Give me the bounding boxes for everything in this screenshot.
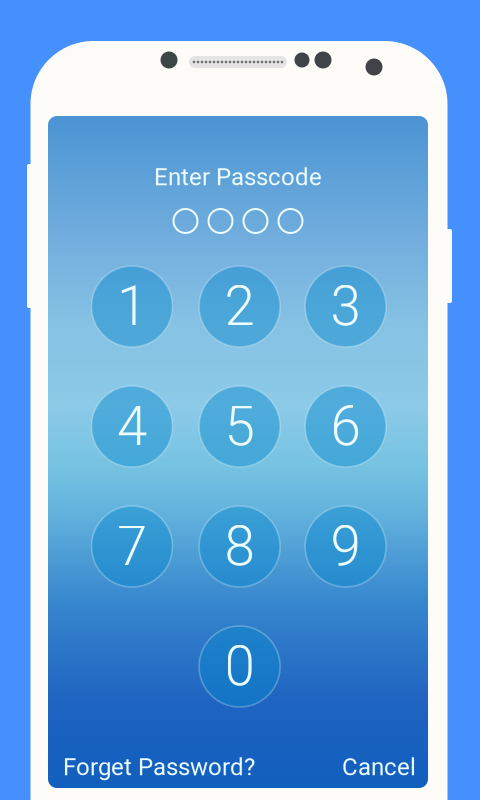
button[interactable]: Forget Password? bbox=[63, 753, 255, 781]
staticText: 3 bbox=[331, 274, 361, 339]
button[interactable]: 9 bbox=[305, 506, 386, 587]
button[interactable]: 7 bbox=[91, 506, 172, 587]
staticText: 2 bbox=[225, 274, 255, 339]
button[interactable]: 2 bbox=[199, 266, 280, 347]
staticText: 1 bbox=[117, 274, 147, 339]
button[interactable]: 1 bbox=[91, 266, 172, 347]
staticText: Enter Passcode bbox=[154, 163, 322, 191]
button[interactable]: Cancel bbox=[342, 753, 416, 781]
staticText: 0 bbox=[225, 634, 255, 699]
button[interactable]: 6 bbox=[305, 386, 386, 467]
staticText: Forget Password? bbox=[63, 753, 255, 781]
button[interactable]: 5 bbox=[199, 386, 280, 467]
staticText: 7 bbox=[117, 514, 147, 579]
button[interactable]: 3 bbox=[305, 266, 386, 347]
button[interactable]: 8 bbox=[199, 506, 280, 587]
button[interactable]: 0 bbox=[199, 626, 280, 707]
button[interactable]: 4 bbox=[91, 386, 172, 467]
staticText: 8 bbox=[225, 514, 255, 579]
staticText: Cancel bbox=[342, 753, 416, 781]
staticText: 6 bbox=[331, 394, 361, 459]
staticText: 9 bbox=[331, 514, 361, 579]
staticText: 5 bbox=[225, 394, 255, 459]
staticText: 4 bbox=[117, 394, 147, 459]
